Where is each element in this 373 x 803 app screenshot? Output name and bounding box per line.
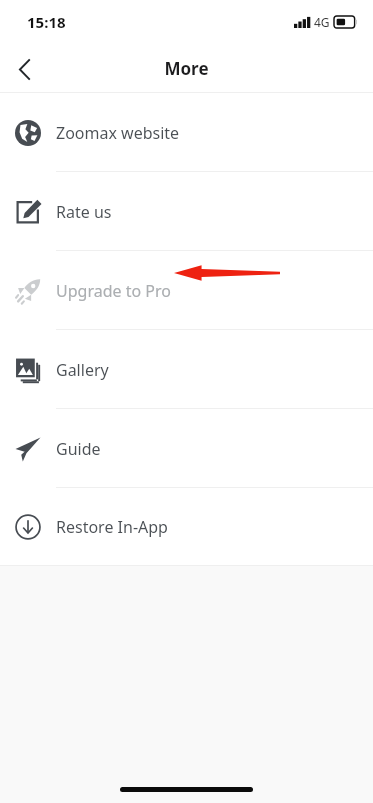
- staticText: Rate us: [56, 201, 112, 223]
- button[interactable]: Restore In-App: [0, 488, 373, 565]
- staticText: 15:18: [27, 12, 66, 32]
- button[interactable]: Back: [0, 45, 48, 93]
- button[interactable]: Guide: [0, 409, 373, 488]
- staticText: Restore In-App: [56, 516, 168, 538]
- button[interactable]: Upgrade to Pro: [0, 251, 373, 330]
- staticText: 4G: [314, 14, 330, 30]
- staticText: Gallery: [56, 359, 109, 381]
- staticText: More: [164, 57, 209, 80]
- button[interactable]: Zoomax website: [0, 93, 373, 172]
- staticText: Zoomax website: [56, 122, 180, 144]
- staticText: Upgrade to Pro: [56, 280, 171, 302]
- button[interactable]: Gallery: [0, 330, 373, 409]
- button[interactable]: Rate us: [0, 172, 373, 251]
- staticText: Guide: [56, 438, 101, 460]
